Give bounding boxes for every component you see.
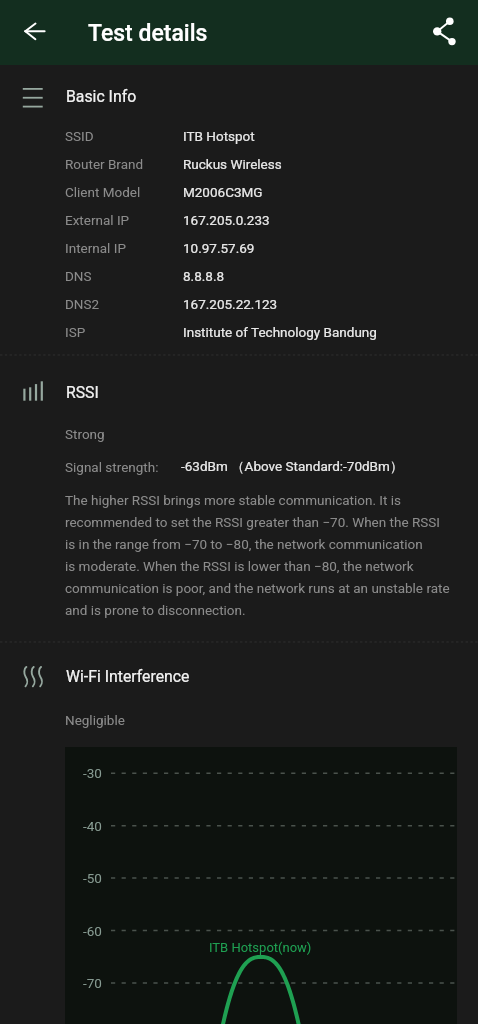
button[interactable]: Basic Info [0, 76, 478, 116]
button[interactable]: Share [420, 8, 468, 56]
staticText: External IP [65, 212, 183, 228]
staticText: -40 [83, 818, 102, 834]
staticText: ITB Hotspot [183, 128, 255, 144]
staticText: -63dBm （Above Standard:-70dBm） [181, 458, 404, 475]
button[interactable]: Wi-Fi Interference [0, 656, 478, 696]
staticText: Strong [65, 426, 105, 442]
staticText: Signal strength: [65, 459, 159, 475]
staticText: RSSI [66, 383, 99, 402]
staticText: ISP [65, 324, 183, 340]
button[interactable]: Router Brand [65, 150, 478, 178]
button[interactable]: DNS [65, 262, 478, 290]
staticText: -30 [83, 765, 102, 781]
staticText: Test details [88, 20, 208, 47]
button[interactable]: External IP [65, 206, 478, 234]
staticText: Router Brand [65, 156, 183, 172]
staticText: SSID [65, 128, 183, 144]
staticText: Client Model [65, 184, 183, 200]
staticText: 167.205.0.233 [183, 212, 270, 228]
staticText: 10.97.57.69 [183, 240, 255, 256]
button[interactable]: SSID [65, 122, 478, 150]
staticText: Internal IP [65, 240, 183, 256]
button[interactable]: ISP [65, 318, 478, 346]
button[interactable]: Back [10, 8, 58, 56]
staticText: 8.8.8.8 [183, 268, 225, 284]
staticText: -70 [83, 975, 102, 991]
staticText: Negligible [65, 712, 125, 728]
staticText: DNS [65, 268, 183, 284]
staticText: -60 [83, 923, 102, 939]
staticText: The higher RSSI brings more stable commu… [65, 492, 450, 618]
staticText: 167.205.22.123 [183, 296, 278, 312]
staticText: M2006C3MG [183, 184, 263, 200]
staticText: Ruckus Wireless [183, 156, 282, 172]
button[interactable]: DNS2 [65, 290, 478, 318]
staticText: -50 [83, 870, 102, 886]
button[interactable]: RSSI [0, 372, 478, 412]
staticText: Basic Info [66, 87, 137, 106]
staticText: DNS2 [65, 296, 183, 312]
staticText: Institute of Technology Bandung [183, 324, 377, 340]
staticText: Wi-Fi Interference [66, 667, 190, 686]
staticText: ITB Hotspot(now) [209, 940, 312, 955]
button[interactable]: Client Model [65, 178, 478, 206]
button[interactable]: Internal IP [65, 234, 478, 262]
